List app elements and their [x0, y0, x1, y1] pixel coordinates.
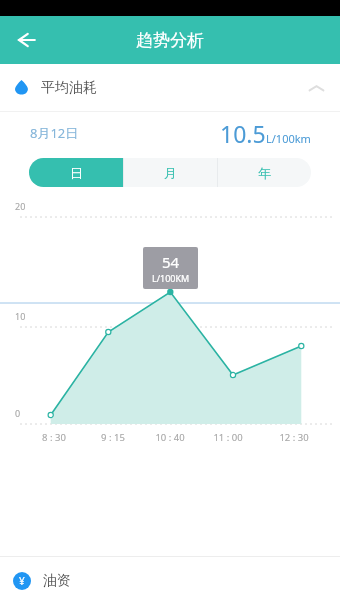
- button[interactable]: 日: [29, 158, 123, 187]
- staticText: 年: [258, 165, 271, 181]
- button[interactable]: 月: [124, 158, 217, 187]
- staticText: L/100km: [266, 131, 311, 146]
- staticText: 8 : 30: [34, 431, 74, 444]
- button[interactable]: 平均油耗: [0, 64, 340, 111]
- staticText: 月: [164, 165, 177, 181]
- staticText: 日: [70, 165, 83, 181]
- button[interactable]: Back: [4, 18, 48, 62]
- button[interactable]: 年: [218, 158, 311, 187]
- staticText: 12 : 30: [274, 431, 314, 444]
- staticText: 8月12日: [30, 124, 79, 142]
- staticText: ¥: [19, 574, 25, 588]
- staticText: 9 : 15: [93, 431, 133, 444]
- staticText: 10.5: [220, 118, 266, 149]
- staticText: 0: [15, 407, 21, 419]
- staticText: 11 : 00: [208, 431, 248, 444]
- staticText: 20: [15, 200, 26, 212]
- staticText: 10 : 40: [150, 431, 190, 444]
- staticText: 10: [15, 310, 26, 322]
- staticText: 平均油耗: [41, 79, 97, 97]
- staticText: L/100KM: [152, 272, 190, 284]
- button[interactable]: ¥: [0, 557, 340, 604]
- staticText: 油资: [43, 572, 71, 590]
- staticText: 54: [162, 252, 180, 272]
- staticText: 趋势分析: [136, 30, 204, 51]
